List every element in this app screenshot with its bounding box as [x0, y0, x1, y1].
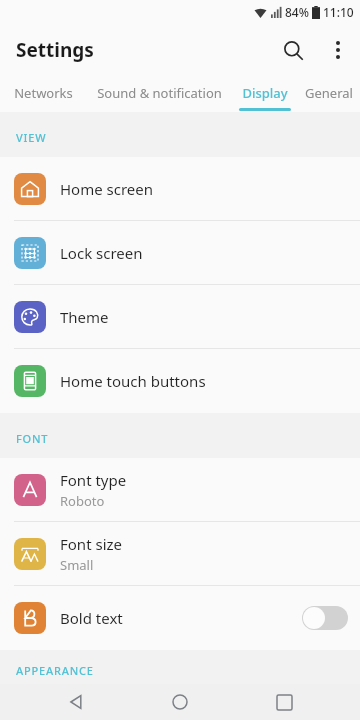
staticText: Small [60, 556, 94, 574]
button[interactable]: Home [152, 684, 208, 720]
staticText: Bold text [60, 608, 123, 628]
button[interactable]: Search [270, 27, 316, 73]
staticText: Theme [60, 307, 109, 327]
button[interactable]: Networks [0, 75, 86, 112]
button[interactable]: Bold text toggle [302, 606, 348, 630]
button[interactable]: Home touch buttons [0, 349, 360, 413]
staticText: Lock screen [60, 243, 143, 263]
button[interactable]: Display [232, 75, 298, 112]
staticText: Roboto [60, 492, 105, 510]
staticText: Home touch buttons [60, 371, 206, 391]
button[interactable]: Home screen [0, 157, 360, 221]
staticText: Settings [16, 37, 94, 63]
staticText: VIEW [16, 130, 47, 145]
button[interactable]: Recent apps [256, 684, 312, 720]
button[interactable]: Font type [0, 458, 360, 522]
staticText: Display [242, 84, 288, 102]
button[interactable]: More options [316, 28, 360, 72]
staticText: 11:10 [323, 4, 354, 20]
staticText: Home screen [60, 179, 154, 199]
button[interactable]: Sound & notification [86, 75, 232, 112]
staticText: Font size [60, 534, 123, 554]
button[interactable]: Font size [0, 522, 360, 586]
button[interactable]: Lock screen [0, 221, 360, 285]
button[interactable]: Back [48, 684, 104, 720]
button[interactable]: General [298, 75, 360, 112]
staticText: Sound & notification [97, 84, 222, 102]
staticText: 84% [285, 4, 309, 20]
button[interactable]: Bold text [0, 586, 360, 650]
staticText: Font type [60, 470, 127, 490]
staticText: General [305, 84, 353, 102]
staticText: APPEARANCE [16, 663, 94, 678]
staticText: FONT [16, 431, 49, 446]
staticText: Networks [14, 84, 73, 102]
button[interactable]: Theme [0, 285, 360, 349]
